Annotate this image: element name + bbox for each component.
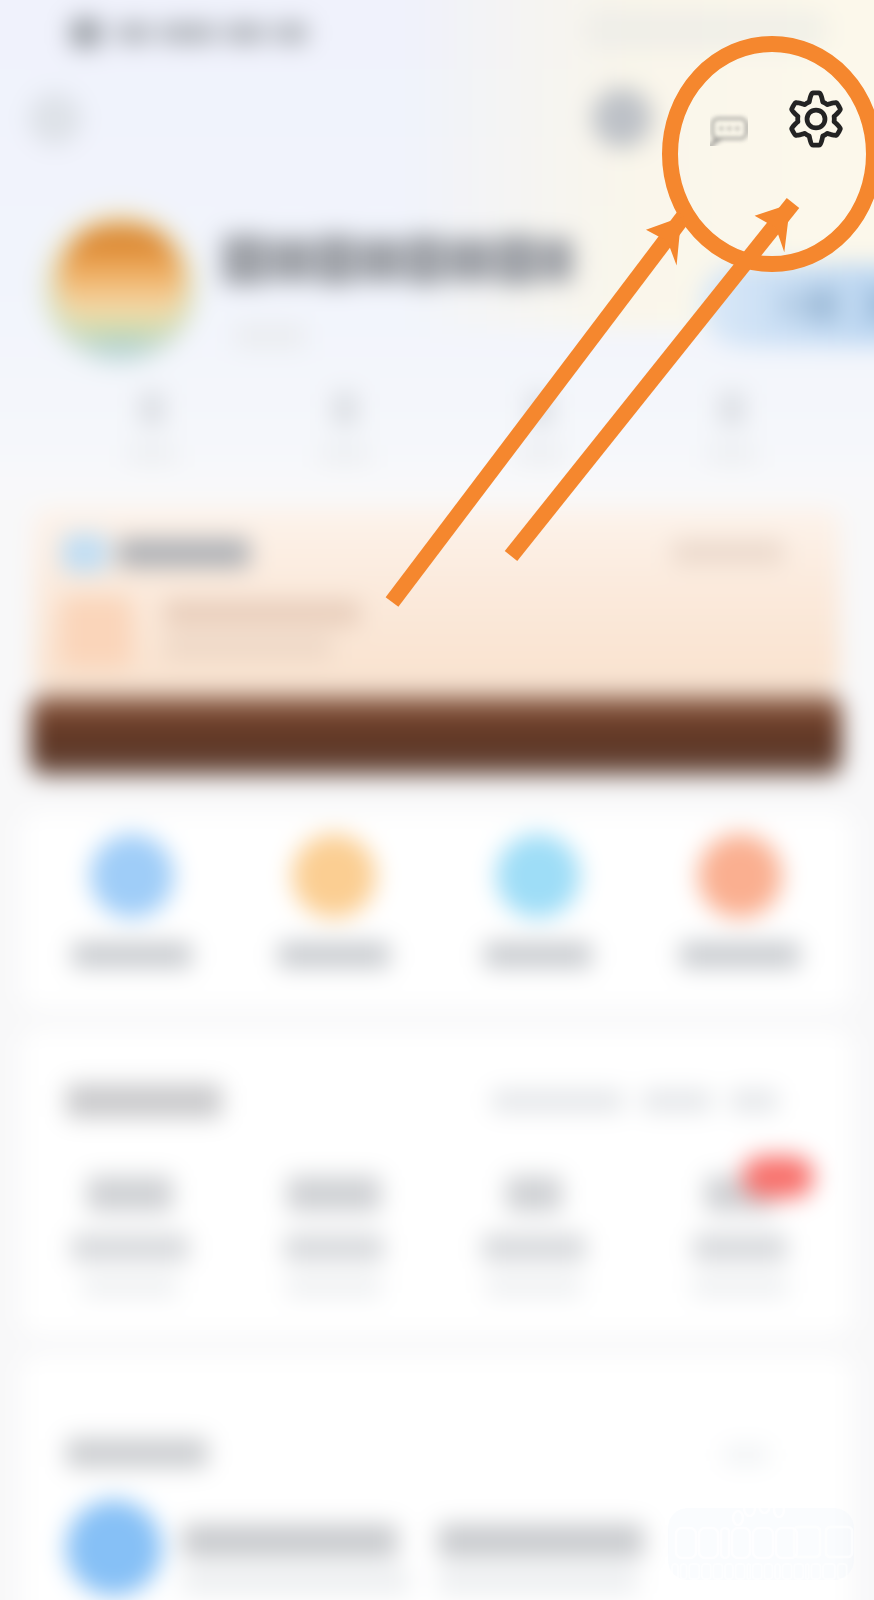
button[interactable]: Customer service xyxy=(592,88,652,148)
button[interactable] xyxy=(264,1176,404,1296)
button[interactable]: Settings xyxy=(784,87,848,151)
button[interactable] xyxy=(114,392,190,464)
button[interactable] xyxy=(502,392,578,464)
button[interactable] xyxy=(478,834,598,968)
button[interactable] xyxy=(60,1176,200,1296)
button[interactable] xyxy=(274,834,394,968)
button[interactable] xyxy=(680,834,800,968)
button[interactable]: Messages xyxy=(706,104,752,150)
button[interactable] xyxy=(464,1176,604,1296)
button[interactable] xyxy=(700,264,874,346)
button[interactable] xyxy=(72,834,192,968)
button[interactable] xyxy=(307,392,383,464)
button[interactable]: Scan xyxy=(28,92,82,146)
button[interactable] xyxy=(670,1176,810,1296)
button[interactable] xyxy=(694,392,770,464)
